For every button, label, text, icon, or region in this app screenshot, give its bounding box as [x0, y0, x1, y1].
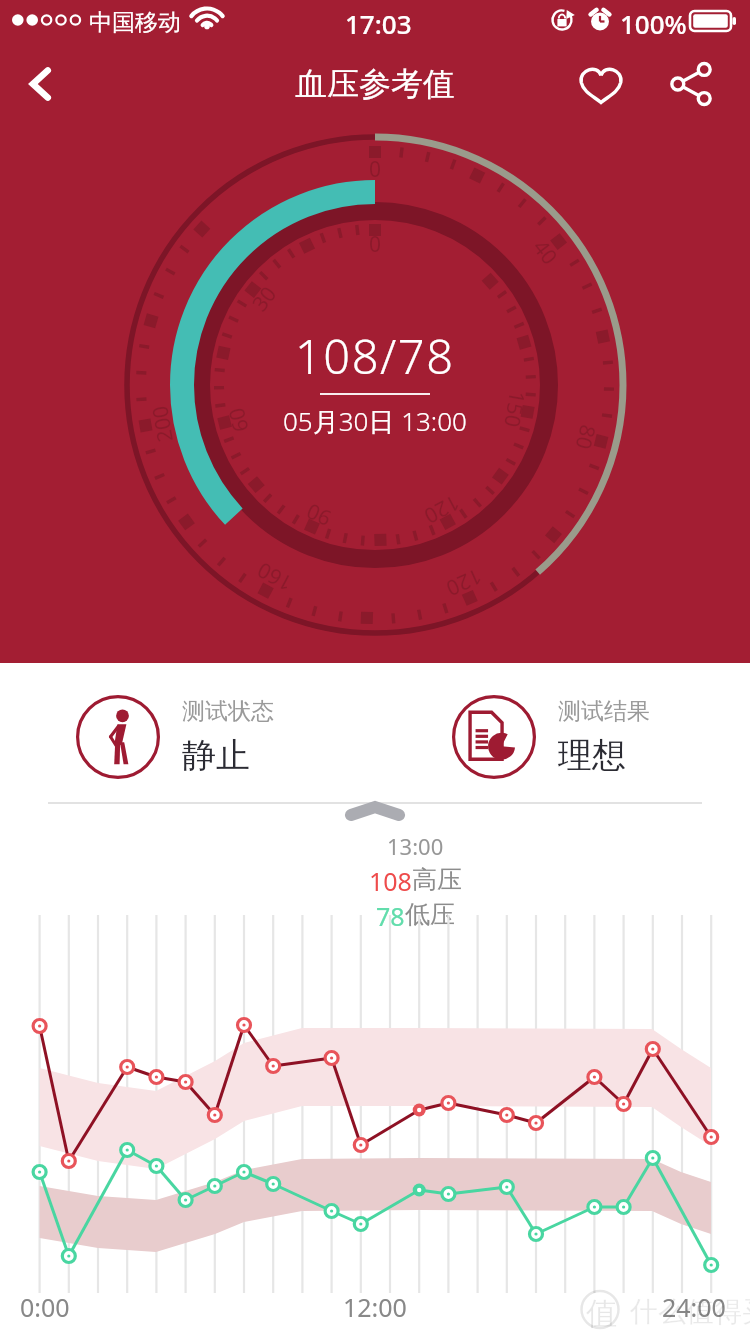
staticText: 150 — [497, 389, 532, 430]
staticText: 值 — [586, 1294, 617, 1333]
button[interactable]: Share — [658, 51, 724, 117]
staticText: 120 — [418, 488, 465, 531]
button[interactable]: Favorite — [568, 51, 634, 117]
staticText: 120 — [441, 562, 486, 603]
staticText: 108 — [369, 864, 412, 898]
staticText: 108/78 — [295, 324, 455, 388]
staticText: 低压 — [405, 899, 455, 930]
staticText: 80 — [568, 422, 603, 453]
staticText: 160 — [251, 555, 298, 598]
staticText: 100% — [620, 6, 687, 41]
staticText: 200 — [145, 403, 180, 444]
button[interactable]: 测试状态 — [76, 687, 306, 787]
staticText: 13:00 — [387, 831, 444, 861]
staticText: 高压 — [412, 864, 462, 895]
staticText: 24:00 — [662, 1290, 726, 1324]
staticText: 90 — [301, 496, 336, 533]
staticText: 什么值得买 — [630, 1294, 750, 1329]
staticText: 静止 — [182, 734, 250, 777]
button[interactable]: Back — [8, 51, 74, 117]
staticText: 17:03 — [345, 6, 412, 41]
staticText: 30 — [245, 280, 284, 317]
staticText: 0 — [369, 155, 382, 184]
staticText: 0 — [369, 230, 382, 259]
staticText: 12:00 — [343, 1290, 407, 1324]
staticText: 78 — [376, 899, 405, 933]
staticText: 05月30日 13:00 — [283, 403, 467, 439]
button[interactable]: 测试结果 — [452, 687, 682, 787]
staticText: 60 — [221, 404, 256, 435]
staticText: 中国移动 — [89, 8, 181, 37]
staticText: 0:00 — [20, 1290, 70, 1324]
staticText: 40 — [526, 234, 565, 271]
staticText: 测试状态 — [182, 697, 274, 726]
staticText: 测试结果 — [558, 697, 650, 726]
staticText: 理想 — [558, 734, 626, 777]
staticText: 血压参考值 — [295, 64, 455, 104]
